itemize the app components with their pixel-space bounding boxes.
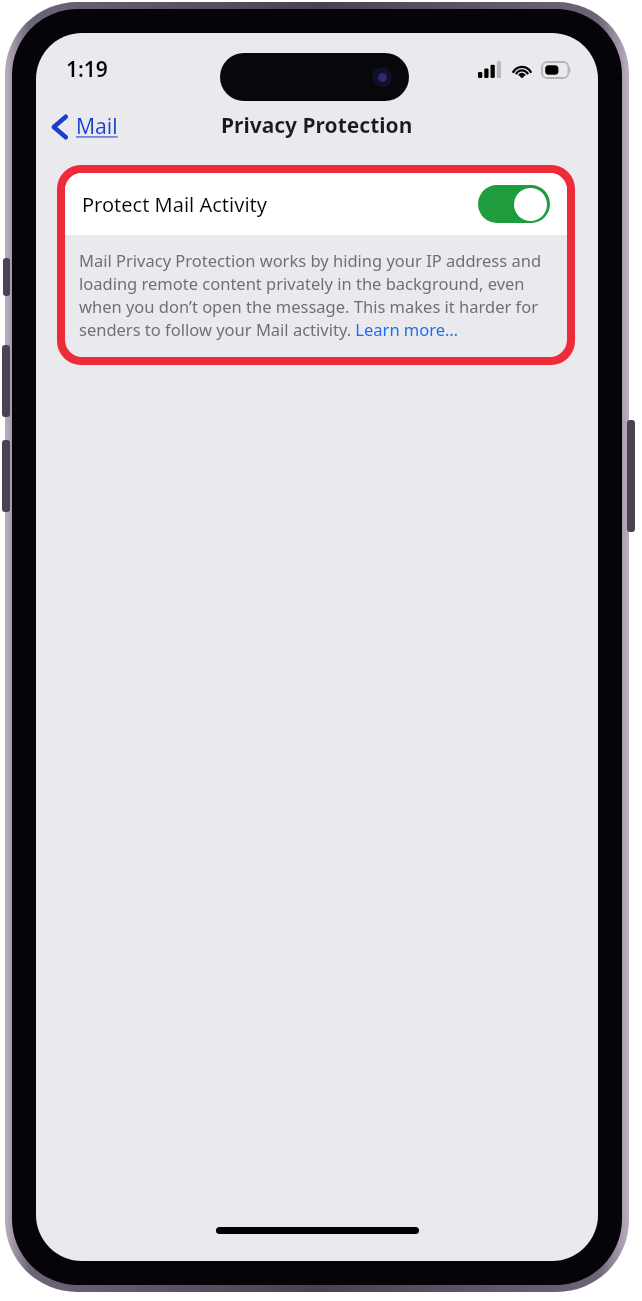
button[interactable]: Protect Mail Activity xyxy=(65,173,567,235)
button[interactable]: Mail xyxy=(48,106,122,147)
staticText: 1:19 xyxy=(66,55,108,84)
button[interactable]: Mail Privacy Protection works by hiding … xyxy=(79,249,553,341)
button[interactable]: Protect Mail Activity toggle, on xyxy=(478,185,550,223)
staticText: Privacy Protection xyxy=(221,111,413,140)
staticText: Mail xyxy=(76,112,118,141)
staticText: Protect Mail Activity xyxy=(82,191,478,218)
